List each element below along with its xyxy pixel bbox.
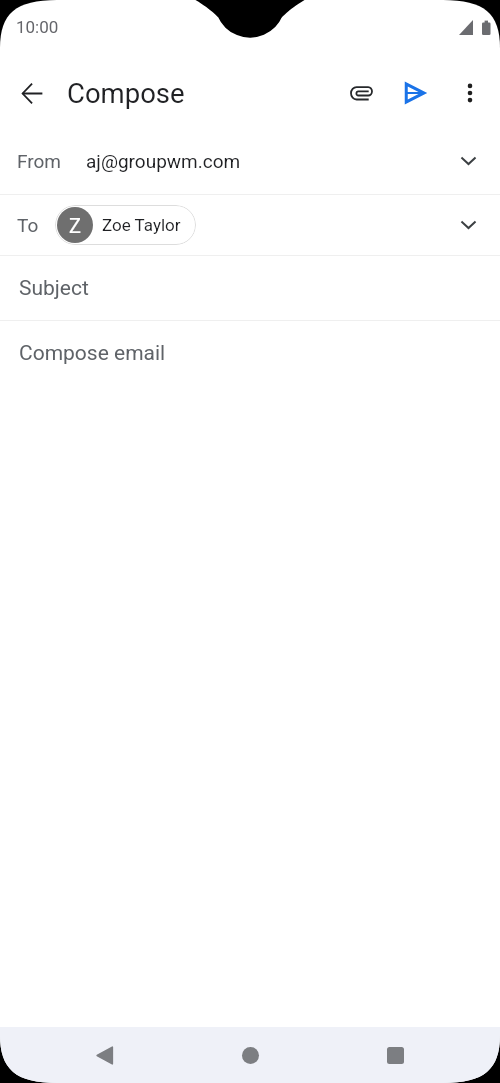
button[interactable]: From <box>0 128 500 194</box>
button[interactable]: Send <box>395 69 443 117</box>
staticText: From <box>17 150 62 172</box>
staticText: To <box>17 214 39 236</box>
staticText: 10:00 <box>16 17 59 37</box>
button[interactable]: To <box>0 195 500 255</box>
button[interactable]: Home <box>222 1027 278 1083</box>
button[interactable]: Recents <box>367 1027 423 1083</box>
button[interactable]: Subject <box>0 256 500 320</box>
button[interactable]: More options <box>446 69 494 117</box>
button[interactable]: Compose email <box>0 321 500 1027</box>
staticText: Compose email <box>19 341 166 366</box>
button[interactable]: Back <box>77 1027 133 1083</box>
button[interactable]: Attach file <box>338 69 386 117</box>
button[interactable]: Back <box>8 69 56 117</box>
staticText: Z <box>69 214 81 237</box>
staticText: Zoe Taylor <box>102 215 181 235</box>
staticText: Subject <box>19 276 89 301</box>
staticText: aj@groupwm.com <box>86 150 241 172</box>
button[interactable]: Z <box>55 205 196 245</box>
staticText: Compose <box>67 77 185 109</box>
